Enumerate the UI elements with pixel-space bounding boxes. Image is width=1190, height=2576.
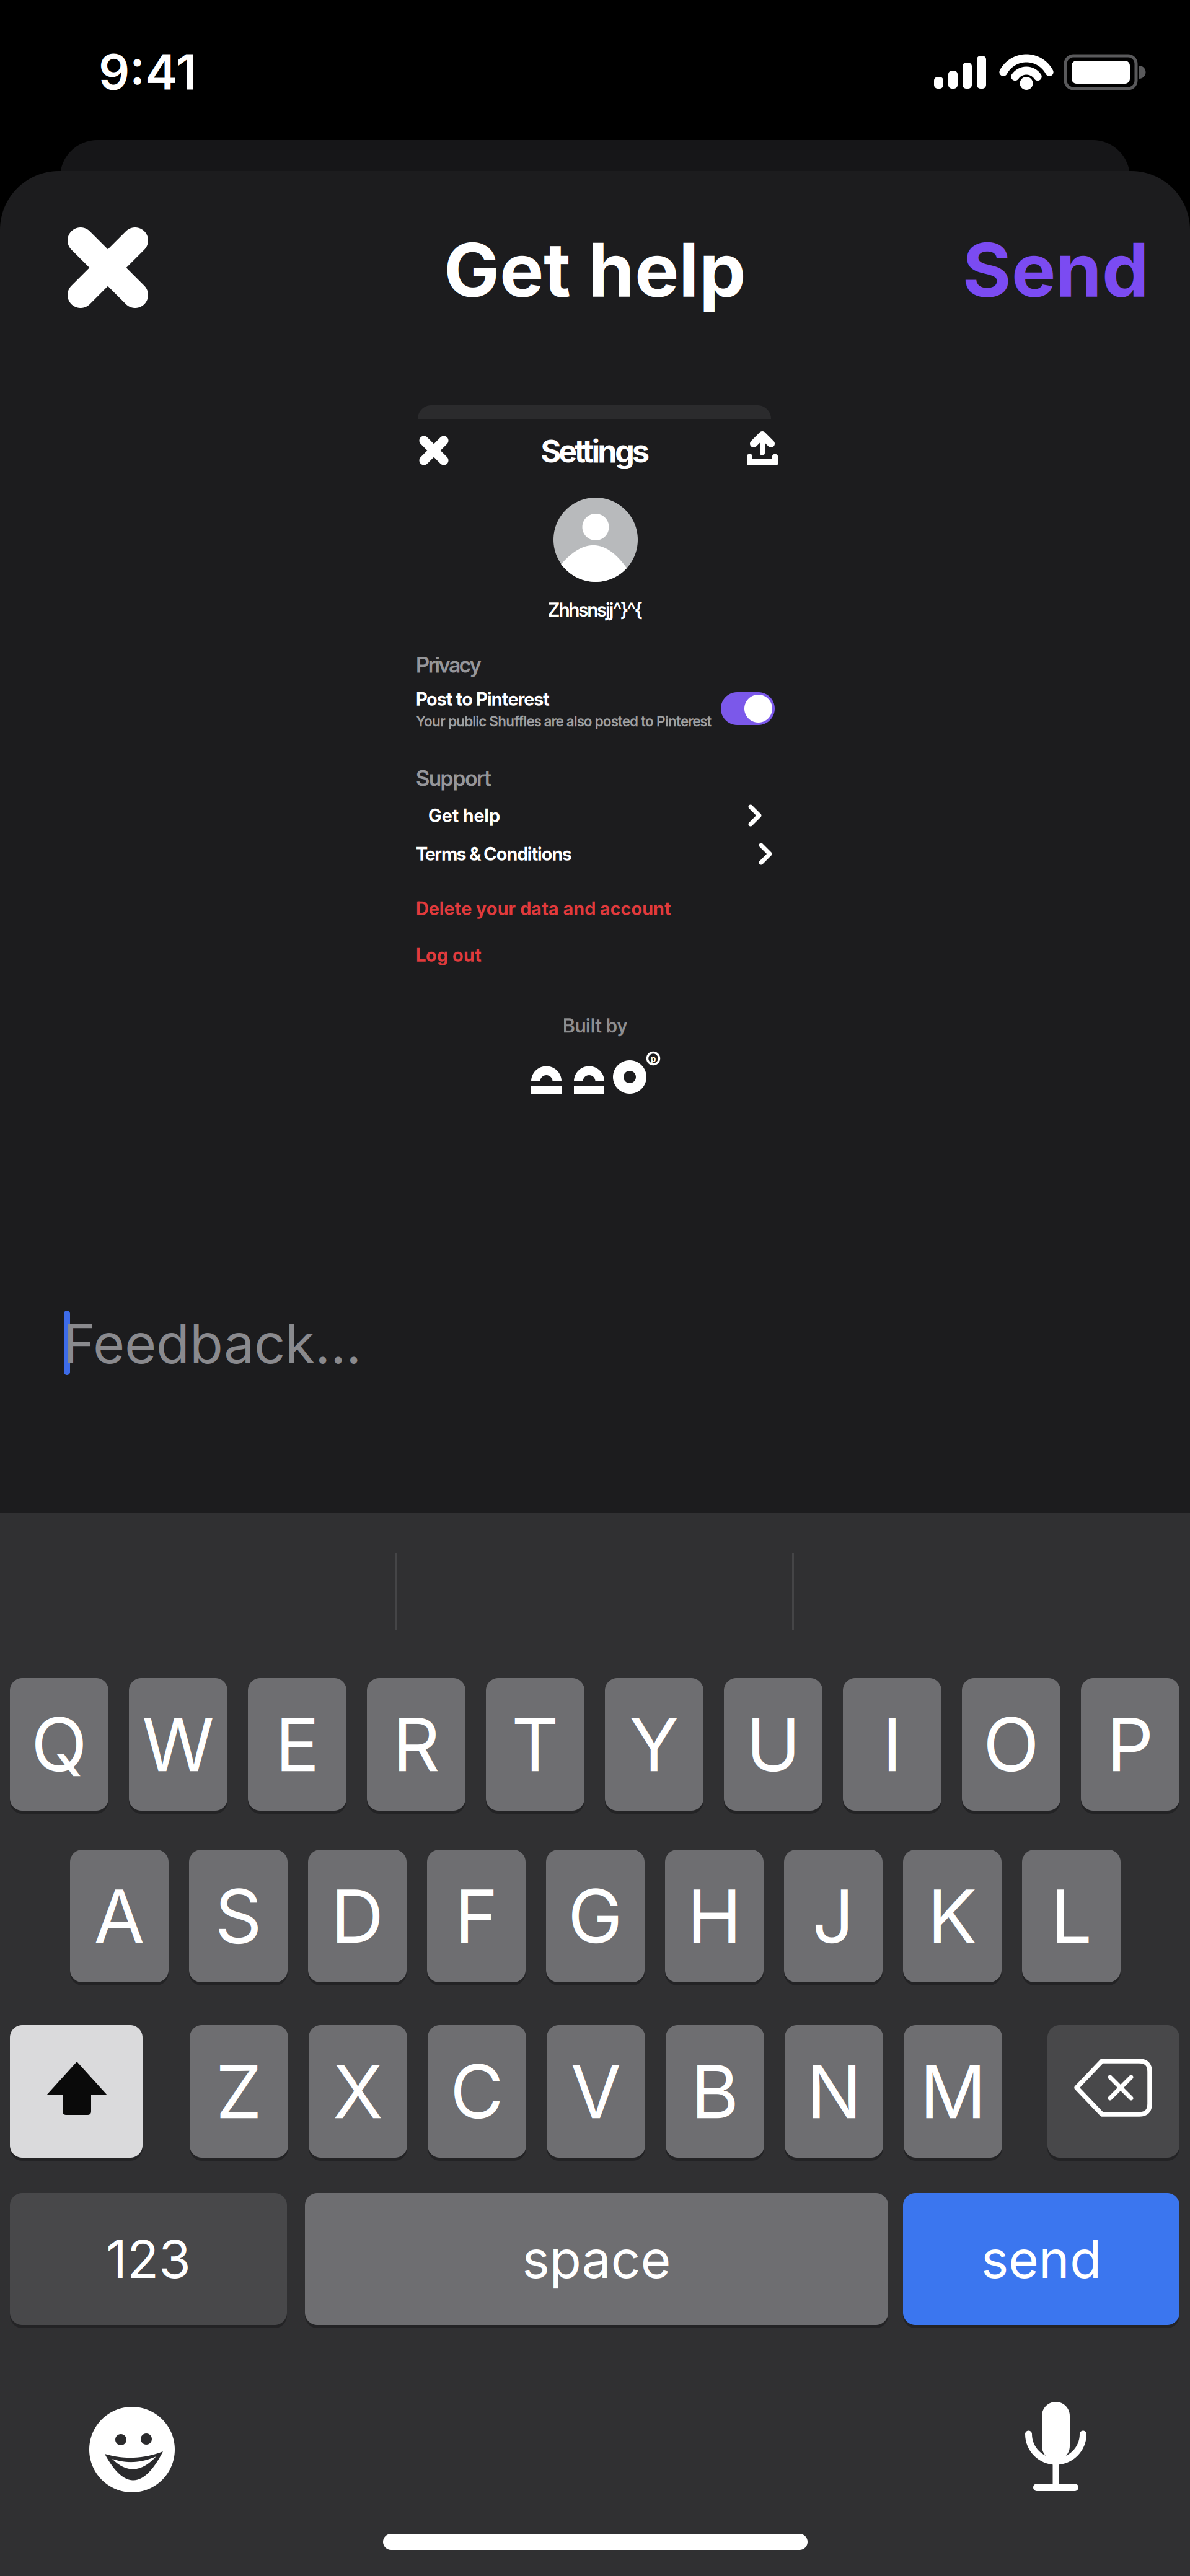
staticText: Settings — [541, 432, 649, 470]
button[interactable]: Shift — [10, 2025, 143, 2161]
staticText: U — [746, 1700, 800, 1789]
button[interactable]: S — [189, 1850, 288, 1985]
button[interactable]: Dictation — [1018, 2396, 1093, 2495]
button[interactable]: Y — [605, 1678, 703, 1814]
button[interactable]: space — [305, 2193, 888, 2328]
staticText: V — [571, 2047, 621, 2136]
button[interactable]: E — [248, 1678, 346, 1814]
button[interactable]: send — [903, 2193, 1179, 2328]
staticText: P — [1107, 1700, 1154, 1789]
staticText: H — [687, 1872, 742, 1961]
staticText: Built by — [563, 1014, 627, 1037]
staticText: space — [522, 2228, 671, 2291]
button[interactable]: Q — [10, 1678, 108, 1814]
button[interactable]: F — [427, 1850, 526, 1985]
staticText: Delete your data and account — [416, 897, 671, 919]
button[interactable]: Emoji — [82, 2400, 182, 2499]
staticText: Z — [216, 2047, 262, 2136]
button[interactable]: 123 — [10, 2193, 287, 2328]
staticText: C — [450, 2047, 504, 2136]
staticText: S — [215, 1872, 262, 1961]
staticText: N — [806, 2047, 862, 2136]
button[interactable]: J — [784, 1850, 883, 1985]
button[interactable]: W — [129, 1678, 227, 1814]
staticText: 9:41 — [99, 42, 196, 101]
staticText: W — [142, 1700, 214, 1789]
staticText: 123 — [106, 2228, 191, 2291]
button[interactable]: D — [308, 1850, 407, 1985]
staticText: Support — [416, 765, 491, 791]
staticText: E — [275, 1700, 319, 1789]
staticText: Y — [629, 1700, 679, 1789]
button[interactable]: Send — [827, 223, 1149, 316]
button[interactable]: P — [1081, 1678, 1179, 1814]
staticText: I — [882, 1700, 902, 1789]
button[interactable]: O — [962, 1678, 1060, 1814]
staticText: Feedback... — [63, 1310, 361, 1376]
button[interactable]: U — [724, 1678, 822, 1814]
staticText: Privacy — [416, 652, 481, 678]
staticText: Your public Shuffles are also posted to … — [416, 713, 712, 730]
staticText: Terms & Conditions — [416, 843, 572, 865]
staticText: send — [981, 2228, 1101, 2291]
staticText: G — [568, 1872, 623, 1961]
staticText: T — [511, 1700, 559, 1789]
button[interactable]: Delete — [1047, 2025, 1179, 2161]
button[interactable]: K — [903, 1850, 1002, 1985]
staticText: X — [333, 2047, 383, 2136]
button[interactable]: B — [666, 2025, 764, 2161]
staticText: O — [983, 1700, 1039, 1789]
staticText: F — [455, 1872, 498, 1961]
button[interactable]: A — [70, 1850, 169, 1985]
button[interactable]: N — [785, 2025, 883, 2161]
button[interactable]: G — [546, 1850, 645, 1985]
staticText: B — [691, 2047, 739, 2136]
staticText: A — [94, 1872, 145, 1961]
button[interactable]: I — [843, 1678, 941, 1814]
staticText: p — [651, 1054, 656, 1064]
staticText: Send — [963, 225, 1149, 315]
staticText: Q — [31, 1700, 87, 1789]
button[interactable]: Z — [190, 2025, 288, 2161]
staticText: M — [920, 2047, 986, 2136]
staticText: R — [393, 1700, 440, 1789]
staticText: K — [928, 1872, 977, 1961]
staticText: D — [331, 1872, 384, 1961]
button[interactable]: C — [428, 2025, 526, 2161]
staticText: Zhhsnsjj^}^{ — [548, 598, 642, 621]
button[interactable]: V — [547, 2025, 645, 2161]
button[interactable]: H — [665, 1850, 764, 1985]
button[interactable]: M — [904, 2025, 1002, 2161]
staticText: L — [1051, 1872, 1092, 1961]
staticText: J — [812, 1872, 854, 1961]
button[interactable]: T — [486, 1678, 584, 1814]
staticText: Post to Pinterest — [416, 688, 550, 710]
button[interactable]: L — [1022, 1850, 1121, 1985]
button[interactable]: X — [309, 2025, 407, 2161]
staticText: Get help — [428, 805, 500, 827]
button[interactable]: Close — [66, 226, 150, 310]
button[interactable]: R — [367, 1678, 465, 1814]
staticText: Log out — [416, 944, 482, 966]
staticText: Get help — [444, 225, 746, 315]
